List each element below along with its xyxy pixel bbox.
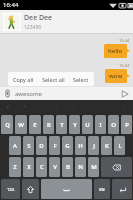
staticText: Select [73,76,89,83]
staticText: H [78,142,83,150]
staticText: A [13,142,17,150]
staticText: Copy all [13,76,34,83]
staticText: Select all [42,76,65,83]
staticText: 16:44 [119,63,130,68]
staticText: 16:44 [119,38,130,43]
button[interactable]: H [75,136,86,155]
staticText: G [65,142,70,150]
staticText: O [111,121,116,129]
button[interactable]: Z [9,157,21,177]
button[interactable]: EN [94,179,110,199]
button[interactable]: S [23,136,34,155]
staticText: P [125,121,129,129]
staticText: D [39,142,44,150]
staticText: Z [13,163,17,171]
button[interactable]: U [82,115,93,134]
button[interactable]: Q [1,115,13,134]
staticText: Dee Dee [24,13,53,23]
button[interactable]: Select all [41,74,66,85]
staticText: M [91,163,97,171]
button[interactable]: E [29,115,41,134]
staticText: 123. [7,187,15,192]
button[interactable]: T [56,115,67,134]
button[interactable]: 123. [1,179,20,199]
staticText: F [53,142,57,150]
staticText: V [53,163,57,171]
button[interactable]: K [101,136,112,155]
button[interactable]: X [23,157,34,177]
button[interactable]: N [75,157,86,177]
button[interactable]: C [36,157,47,177]
button[interactable]: O [108,115,119,134]
staticText: T [60,121,64,129]
button[interactable]: B [62,157,73,177]
staticText: ? [55,104,58,111]
button[interactable]: Send [119,88,130,99]
staticText: S [27,142,31,150]
staticText: awesome [15,90,42,98]
button[interactable]: F [49,136,60,155]
button[interactable]: hello [104,44,127,58]
staticText: ! [73,104,75,111]
button[interactable]: J [88,136,99,155]
staticText: K [105,142,109,150]
button[interactable]: L [114,136,125,155]
staticText: W [18,121,24,129]
button[interactable]: Y [69,115,80,134]
staticText: " [123,104,126,111]
button[interactable]: R [43,115,54,134]
staticText: N [78,163,83,171]
staticText: # [6,104,10,111]
staticText: R [47,121,51,129]
staticText: U [85,121,90,129]
staticText: 16:44 [3,1,19,9]
button[interactable]: Shift [22,179,39,199]
button[interactable]: Space [41,179,92,199]
staticText: EN [99,187,105,192]
button[interactable]: Copy all [12,74,35,85]
staticText: C [40,163,44,171]
staticText: hello [108,47,123,55]
button[interactable]: G [62,136,73,155]
staticText: ; [107,104,109,111]
staticText: * [23,104,26,111]
staticText: L [118,142,122,150]
button[interactable]: I [95,115,106,134]
button[interactable]: Dee Dee [0,10,133,33]
staticText: Q [5,121,10,129]
button[interactable]: Attach [3,89,12,98]
staticText: J [93,142,95,150]
staticText: B [66,163,70,171]
staticText: : [90,104,92,111]
staticText: I [99,121,102,129]
button[interactable]: W [15,115,27,134]
button[interactable]: Backspace [101,157,132,177]
button[interactable]: Enter [112,179,132,199]
button[interactable]: Select [72,74,90,85]
button[interactable]: M [88,157,99,177]
button[interactable]: D [36,136,47,155]
staticText: 123456 [24,24,42,31]
button[interactable]: P [121,115,132,134]
button[interactable]: A [9,136,21,155]
staticText: X [27,163,31,171]
button[interactable]: V [49,157,60,177]
staticText: wow [109,72,123,80]
staticText: Y [73,121,77,129]
button[interactable]: wow [105,69,127,83]
staticText: E [33,121,37,129]
